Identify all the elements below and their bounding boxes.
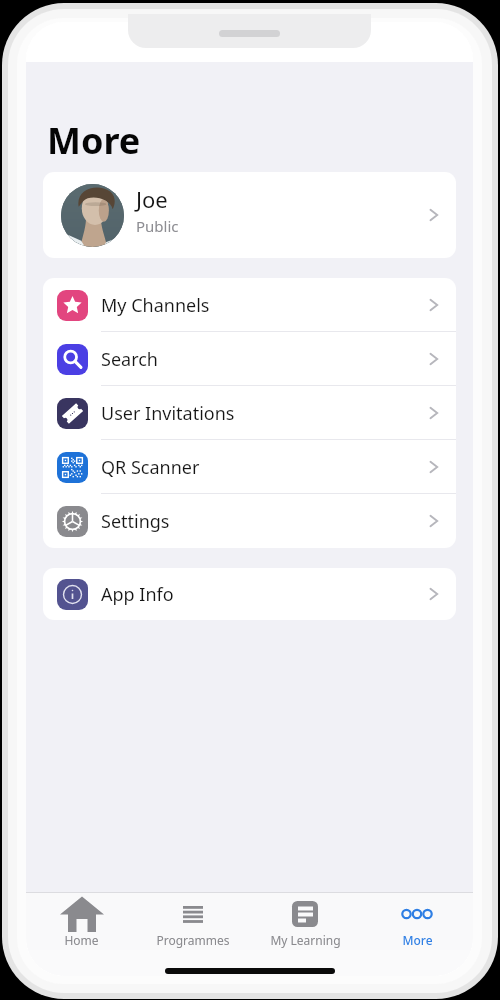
button[interactable]: My Learning: [249, 893, 361, 950]
button[interactable]: User Invitations: [43, 386, 456, 440]
button[interactable]: My Channels: [43, 278, 456, 332]
button[interactable]: QR Scanner: [43, 440, 456, 494]
staticText: App Info: [101, 582, 174, 607]
staticText: User Invitations: [101, 401, 235, 426]
staticText: My Learning: [270, 932, 341, 948]
staticText: QR Scanner: [101, 455, 200, 480]
button[interactable]: Settings: [43, 494, 456, 548]
staticText: My Channels: [101, 293, 210, 318]
button[interactable]: Programmes: [137, 893, 249, 950]
staticText: More: [402, 932, 433, 948]
button[interactable]: App Info: [43, 568, 456, 620]
button[interactable]: Search: [43, 332, 456, 386]
button[interactable]: More: [361, 893, 473, 950]
staticText: Public: [136, 216, 179, 236]
staticText: Home: [64, 932, 99, 948]
staticText: Settings: [101, 509, 170, 534]
button[interactable]: Joe: [43, 172, 456, 258]
staticText: Joe: [136, 184, 168, 214]
staticText: Search: [101, 347, 158, 372]
staticText: Programmes: [156, 932, 230, 948]
button[interactable]: Home: [26, 893, 137, 950]
staticText: More: [47, 116, 141, 165]
